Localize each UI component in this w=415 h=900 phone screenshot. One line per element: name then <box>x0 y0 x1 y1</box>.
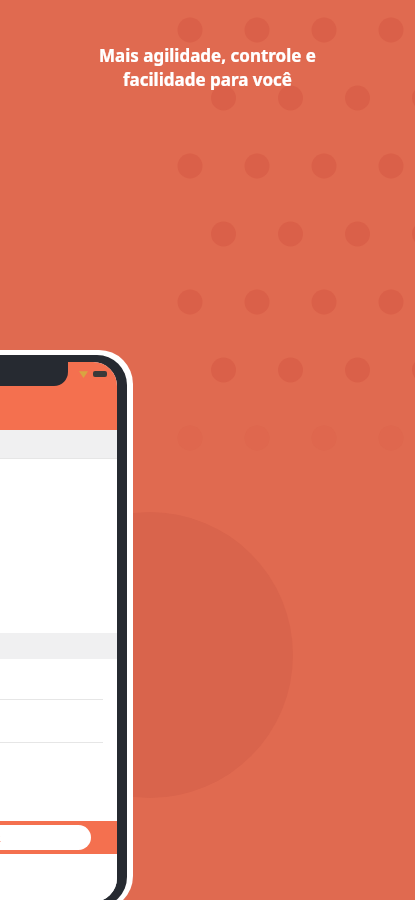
staticText: Mais agilidade, controle e facilidade pa… <box>99 44 316 91</box>
staticText: SAIR <box>0 832 1 844</box>
button[interactable]: SAIR <box>0 825 91 850</box>
